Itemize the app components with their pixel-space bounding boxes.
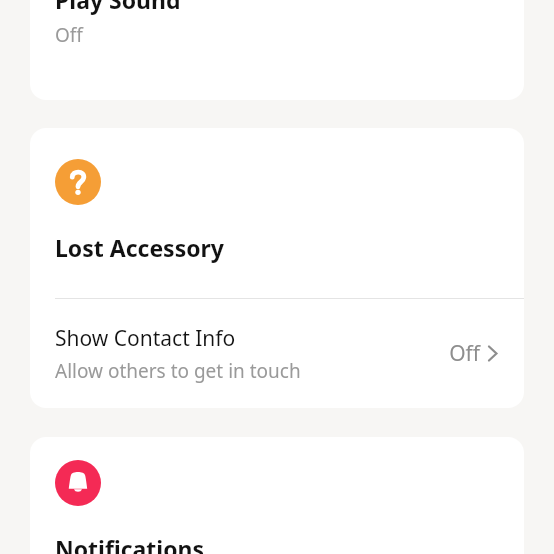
staticText: Lost Accessory — [55, 232, 225, 263]
staticText: Allow others to get in touch — [55, 358, 301, 384]
staticText: Off — [55, 22, 83, 48]
staticText: Show Contact Info — [55, 324, 236, 353]
staticText: Play Sound — [55, 0, 181, 15]
button[interactable]: Show Contact Info — [30, 299, 524, 408]
button[interactable]: Notifications — [30, 437, 524, 554]
button[interactable]: Lost Accessory — [30, 128, 524, 298]
button[interactable]: Play Sound — [30, 0, 524, 100]
staticText: Notifications — [55, 533, 205, 554]
staticText: Off — [449, 339, 480, 368]
